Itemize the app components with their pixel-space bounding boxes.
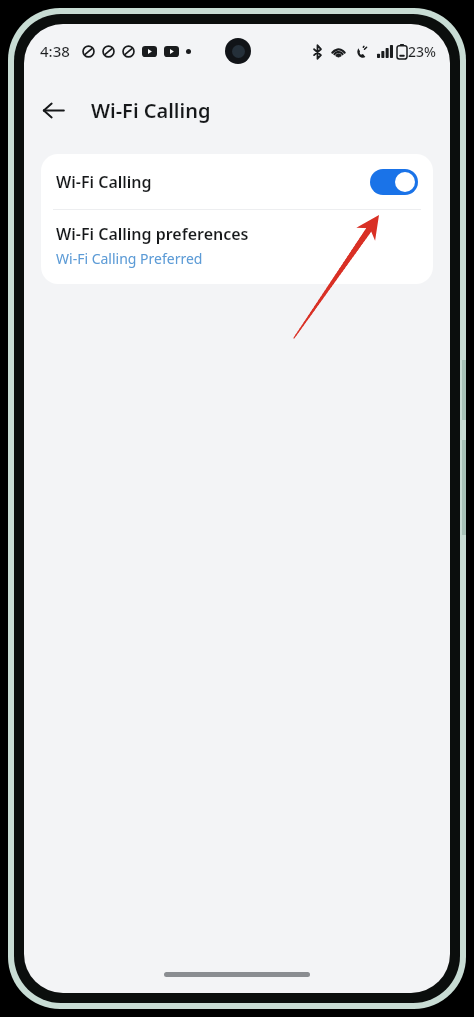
button[interactable]: Back bbox=[30, 87, 76, 133]
staticText: Wi-Fi Calling bbox=[56, 171, 370, 193]
staticText: 23% bbox=[408, 42, 436, 61]
button[interactable]: Wi-Fi Calling toggle, on bbox=[370, 169, 418, 195]
button[interactable]: Wi-Fi Calling bbox=[41, 154, 433, 209]
staticText: Wi-Fi Calling preferences bbox=[56, 223, 249, 245]
staticText: Wi-Fi Calling Preferred bbox=[56, 249, 203, 268]
staticText: Wi-Fi Calling bbox=[91, 97, 211, 124]
button[interactable]: Wi-Fi Calling preferences bbox=[41, 210, 433, 284]
staticText: 4:38 bbox=[40, 41, 70, 61]
